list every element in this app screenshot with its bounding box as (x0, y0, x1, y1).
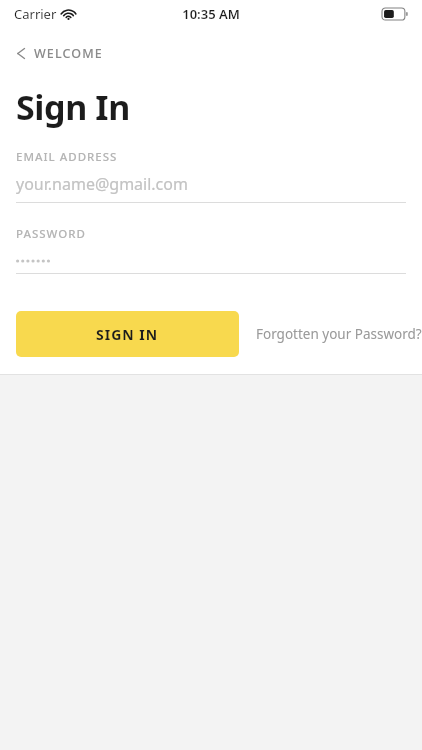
staticText: PASSWORD (16, 226, 87, 242)
staticText: SIGN IN (96, 325, 159, 344)
staticText: Forgotten your Password? (256, 325, 422, 343)
other: Back (16, 46, 26, 61)
staticText: 10:35 AM (182, 5, 240, 23)
staticText: EMAIL ADDRESS (16, 149, 118, 165)
staticText: Sign In (16, 84, 130, 130)
button[interactable] (0, 255, 422, 266)
staticText: Carrier (14, 5, 57, 23)
button[interactable]: SIGN IN (16, 311, 239, 357)
button[interactable]: Forgotten your Password? (256, 315, 422, 353)
staticText: WELCOME (34, 45, 103, 62)
button[interactable]: your.name@gmail.com (0, 173, 422, 195)
button[interactable]: Back (12, 41, 107, 66)
